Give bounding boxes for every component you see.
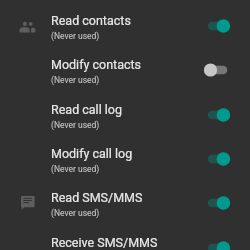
staticText: (Never used) <box>51 120 100 130</box>
button[interactable]: Switch on <box>200 12 236 40</box>
staticText: (Never used) <box>51 75 100 85</box>
staticText: Modify contacts <box>51 57 142 72</box>
staticText: Read contacts <box>51 13 131 28</box>
staticText: Read call log <box>51 102 122 117</box>
staticText: Modify call log <box>51 146 133 161</box>
other: Messages <box>19 196 37 212</box>
other: Contacts <box>19 21 37 37</box>
button[interactable]: Switch on <box>200 145 236 173</box>
staticText: (Never used) <box>51 164 100 174</box>
button[interactable]: Read call log <box>0 90 250 134</box>
button[interactable]: Switch off <box>200 56 236 84</box>
button[interactable]: Receive SMS/MMS <box>0 223 250 250</box>
button[interactable]: Modify call log <box>0 134 250 178</box>
button[interactable]: Contacts <box>0 1 250 45</box>
button[interactable]: Switch on <box>200 101 236 129</box>
button[interactable]: Messages <box>0 178 250 222</box>
staticText: Receive SMS/MMS <box>51 235 158 250</box>
button[interactable]: Switch on <box>200 234 236 250</box>
staticText: (Never used) <box>51 31 100 41</box>
staticText: (Never used) <box>51 208 100 218</box>
button[interactable]: Modify contacts <box>0 45 250 89</box>
staticText: Read SMS/MMS <box>51 190 143 205</box>
button[interactable]: Switch on <box>200 189 236 217</box>
